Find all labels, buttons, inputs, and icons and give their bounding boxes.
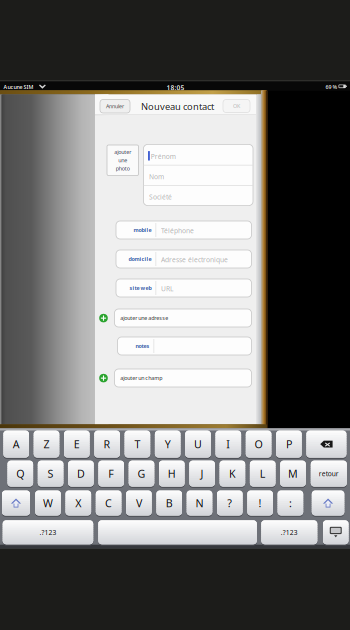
button[interactable]: : xyxy=(278,490,303,517)
staticText: K xyxy=(229,466,236,481)
staticText: ajouter xyxy=(114,148,131,155)
button[interactable]: C xyxy=(96,490,121,517)
staticText: Nom xyxy=(149,172,164,181)
staticText: : xyxy=(289,496,292,510)
staticText: N xyxy=(195,496,203,510)
button[interactable]: T xyxy=(125,431,150,459)
staticText: URL xyxy=(161,284,173,293)
staticText: mobile xyxy=(133,226,151,234)
button[interactable]: M xyxy=(280,461,306,488)
staticText: W xyxy=(43,496,53,510)
button[interactable]: L xyxy=(250,461,275,488)
staticText: notes xyxy=(135,342,149,350)
staticText: ajouter un champ xyxy=(120,374,162,382)
staticText: Aucune SIM xyxy=(3,83,33,90)
button[interactable]: Supprimer xyxy=(306,431,346,459)
button[interactable] xyxy=(98,520,257,546)
staticText: .?123 xyxy=(281,528,298,537)
button[interactable]: OK xyxy=(223,99,250,112)
staticText: G xyxy=(137,466,145,481)
button[interactable]: Z xyxy=(34,431,59,459)
button[interactable]: Y xyxy=(155,431,180,459)
staticText: Q xyxy=(16,466,24,481)
button[interactable]: Masquer le clavier xyxy=(323,520,348,546)
staticText: retour xyxy=(319,469,339,478)
staticText: S xyxy=(48,466,54,481)
button[interactable]: Majuscule xyxy=(312,490,344,517)
button[interactable]: ajouter xyxy=(107,145,138,175)
staticText: X xyxy=(75,496,81,510)
button[interactable]: R xyxy=(94,431,120,459)
staticText: U xyxy=(194,437,202,451)
button[interactable]: .?123 xyxy=(261,520,317,546)
staticText: B xyxy=(166,496,173,510)
button[interactable]: .?123 xyxy=(3,520,93,546)
button[interactable]: P xyxy=(276,431,302,459)
staticText: ? xyxy=(227,496,232,510)
staticText: ! xyxy=(259,496,262,510)
staticText: OK xyxy=(233,102,240,110)
staticText: Nouveau contact xyxy=(141,100,214,113)
staticText: I xyxy=(226,437,230,451)
staticText: P xyxy=(286,437,292,451)
button[interactable]: N xyxy=(187,490,212,517)
button[interactable]: O xyxy=(246,431,271,459)
staticText: A xyxy=(13,437,20,451)
staticText: Société xyxy=(149,192,172,201)
staticText: Prénom xyxy=(151,152,176,161)
button[interactable]: F xyxy=(98,461,124,488)
staticText: E xyxy=(74,437,80,451)
button[interactable]: I xyxy=(215,431,241,459)
button[interactable]: ajouter un champ xyxy=(114,369,251,387)
button[interactable]: S xyxy=(38,461,63,488)
staticText: H xyxy=(168,466,176,481)
button[interactable]: D xyxy=(68,461,94,488)
button[interactable]: V xyxy=(126,490,152,517)
button[interactable]: U xyxy=(185,431,211,459)
staticText: O xyxy=(255,437,263,451)
staticText: Adresse électronique xyxy=(161,255,228,264)
button[interactable]: B xyxy=(156,490,182,517)
button[interactable]: A xyxy=(3,431,29,459)
button[interactable]: Q xyxy=(7,461,33,488)
button[interactable]: retour xyxy=(311,461,347,488)
button[interactable]: Majuscule xyxy=(2,490,30,517)
button[interactable]: mobile xyxy=(116,221,251,239)
button[interactable]: E xyxy=(64,431,90,459)
button[interactable]: Annuler xyxy=(100,99,130,113)
button[interactable]: G xyxy=(129,461,154,488)
staticText: J xyxy=(201,466,204,481)
button[interactable]: ajouter une adresse xyxy=(114,309,251,327)
staticText: D xyxy=(77,466,85,481)
staticText: R xyxy=(104,437,111,451)
button[interactable]: J xyxy=(189,461,215,488)
staticText: F xyxy=(108,466,114,481)
button[interactable]: K xyxy=(220,461,245,488)
button[interactable]: domicile xyxy=(116,250,251,268)
staticText: Annuler xyxy=(106,103,124,110)
staticText: M xyxy=(288,466,298,481)
button[interactable]: notes xyxy=(117,337,251,355)
button[interactable]: site web xyxy=(116,279,251,297)
button[interactable]: H xyxy=(159,461,185,488)
button[interactable]: X xyxy=(65,490,91,517)
button[interactable]: ! xyxy=(247,490,273,517)
staticText: 69 % xyxy=(325,83,337,90)
staticText: domicile xyxy=(128,255,151,263)
staticText: 18:05 xyxy=(166,83,184,92)
staticText: .?123 xyxy=(39,528,56,537)
staticText: ajouter une adresse xyxy=(120,314,168,322)
staticText: Z xyxy=(43,437,49,451)
staticText: L xyxy=(260,466,266,481)
staticText: photo xyxy=(116,165,130,172)
button[interactable]: ? xyxy=(217,490,243,517)
staticText: T xyxy=(134,437,140,451)
staticText: Téléphone xyxy=(161,226,194,235)
button[interactable]: W xyxy=(35,490,61,517)
staticText: site web xyxy=(129,284,151,292)
staticText: C xyxy=(105,496,112,510)
staticText: Y xyxy=(165,437,171,451)
staticText: une xyxy=(118,157,127,164)
staticText: V xyxy=(136,496,142,510)
